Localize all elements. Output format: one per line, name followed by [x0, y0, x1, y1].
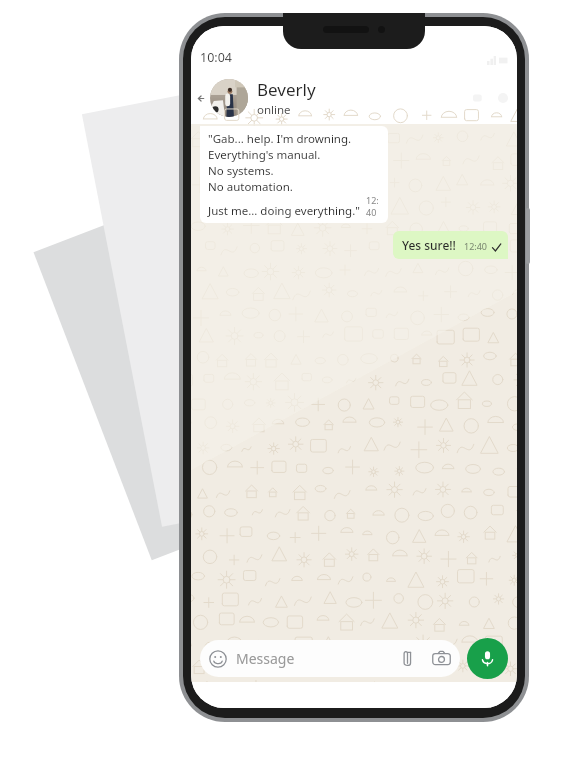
- staticText: Beverly: [257, 78, 316, 101]
- staticText: 10:04: [200, 49, 232, 66]
- staticText: Message: [236, 649, 399, 668]
- staticText: No systems.: [208, 163, 274, 179]
- staticText: Everything's manual.: [208, 147, 321, 163]
- button[interactable]: Back: [193, 90, 209, 106]
- staticText: No automation.: [208, 179, 293, 195]
- button[interactable]: Call: [497, 92, 509, 104]
- staticText: 12:40: [366, 194, 380, 218]
- staticText: Yes sure!!: [402, 237, 456, 253]
- button[interactable]: Yes sure!!: [393, 231, 508, 259]
- button[interactable]: Emoji: [209, 650, 227, 668]
- button[interactable]: Emoji: [200, 640, 460, 677]
- button[interactable]: "Gab... help. I'm drowning.: [200, 126, 388, 223]
- button[interactable]: [210, 79, 248, 117]
- staticText: Just me... doing everything.": [208, 203, 360, 219]
- button[interactable]: Camera: [432, 649, 451, 668]
- button[interactable]: Attach: [399, 650, 416, 667]
- staticText: "Gab... help. I'm drowning.: [208, 131, 352, 147]
- staticText: 12:40: [464, 240, 488, 252]
- button[interactable]: Video call: [473, 91, 487, 105]
- staticText: online: [257, 102, 291, 118]
- button[interactable]: Voice message: [467, 638, 508, 679]
